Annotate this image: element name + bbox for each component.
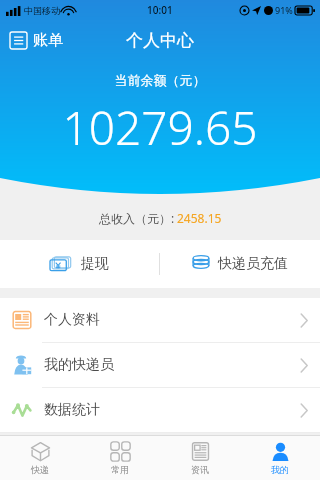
staticText: 我的快递员	[44, 356, 114, 374]
button[interactable]: 提现	[0, 240, 159, 288]
button[interactable]: 个人资料	[0, 298, 320, 342]
staticText: 个人资料	[44, 311, 100, 329]
button[interactable]: 资讯	[160, 436, 240, 480]
staticText: 账单	[33, 31, 63, 50]
staticText: 资讯	[191, 464, 209, 475]
staticText: 2458.15	[177, 210, 222, 226]
staticText: 10279.65	[0, 96, 320, 159]
button[interactable]: 常用	[80, 436, 160, 480]
staticText: 数据统计	[44, 401, 100, 419]
button[interactable]: 快递员充值	[160, 240, 320, 288]
staticText: 快递员充值	[218, 255, 288, 273]
staticText: 总收入（元）:	[99, 210, 175, 226]
staticText: 91%	[275, 4, 293, 16]
staticText: 我的	[271, 464, 289, 475]
staticText: 个人中心	[126, 30, 194, 51]
staticText: 快递	[31, 464, 49, 475]
button[interactable]: 数据统计	[0, 388, 320, 432]
button[interactable]: 我的快递员	[0, 343, 320, 387]
staticText: 当前余额（元）	[0, 72, 320, 88]
button[interactable]: 快递	[0, 436, 80, 480]
staticText: 10:01	[147, 3, 173, 17]
staticText: 常用	[111, 464, 129, 475]
button[interactable]: 我的	[240, 436, 320, 480]
button[interactable]: 账单	[0, 25, 73, 56]
staticText: 提现	[81, 255, 109, 273]
staticText: 中国移动	[24, 5, 60, 16]
